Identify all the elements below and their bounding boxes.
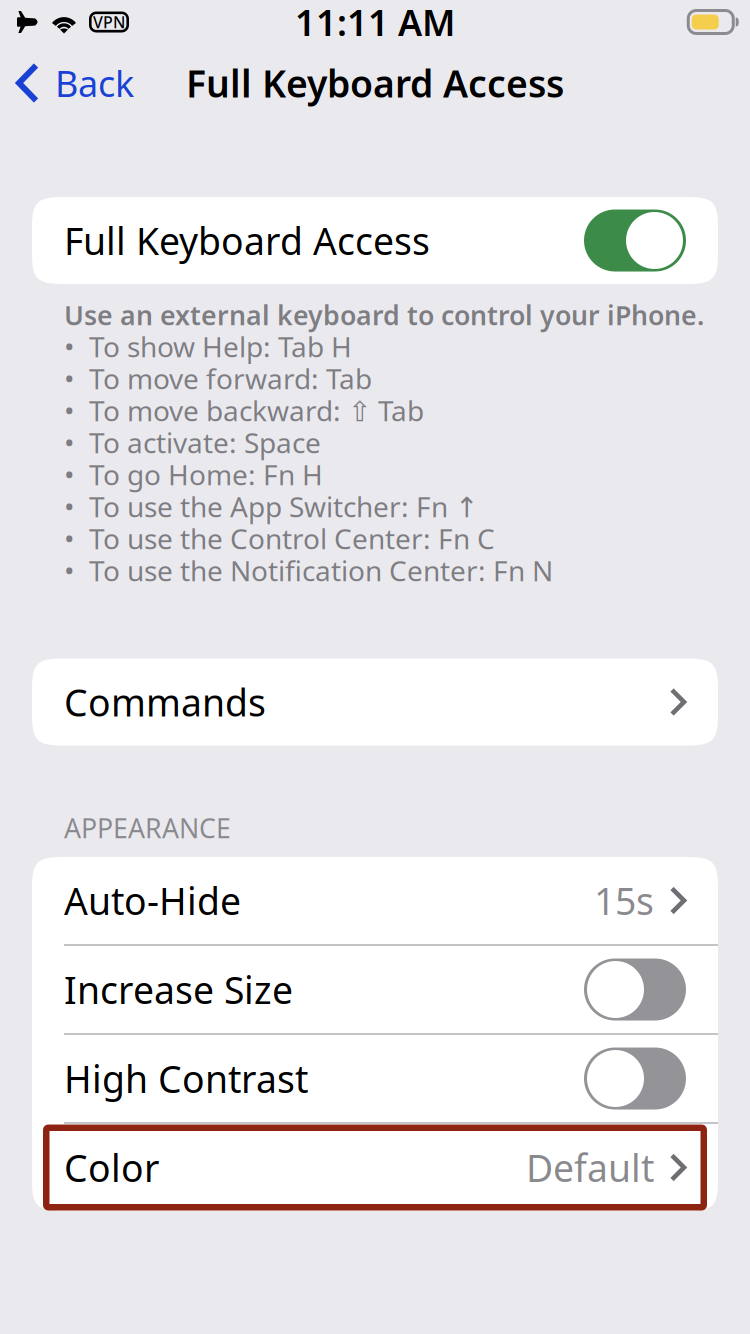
staticText: Auto-Hide	[64, 876, 241, 925]
button[interactable]: Increase Size	[32, 946, 718, 1033]
staticText: To use the Control Center: Fn C	[89, 520, 495, 557]
staticText: •	[64, 328, 75, 365]
staticText: •	[64, 360, 75, 397]
staticText: To use the Notification Center: Fn N	[89, 552, 553, 589]
staticText: VPN	[93, 11, 125, 33]
staticText: To use the App Switcher: Fn ↑	[89, 488, 478, 525]
button[interactable]: Full Keyboard Access	[32, 197, 718, 284]
staticText: 11:11 AM	[295, 0, 455, 46]
button[interactable]: Commands	[32, 658, 718, 745]
staticText: High Contrast	[64, 1054, 308, 1103]
staticText: Default	[526, 1143, 654, 1192]
staticText: To move backward: ⇧ Tab	[89, 392, 424, 429]
staticText: To go Home: Fn H	[89, 456, 323, 493]
staticText: Use an external keyboard to control your…	[64, 297, 704, 333]
staticText: •	[64, 424, 75, 461]
button[interactable]: Color	[32, 1124, 718, 1211]
staticText: Commands	[64, 677, 266, 727]
button[interactable]: Back	[0, 50, 148, 116]
staticText: Full Keyboard Access	[64, 216, 430, 265]
staticText: Color	[64, 1143, 159, 1192]
staticText: •	[64, 552, 75, 589]
staticText: Increase Size	[64, 965, 293, 1014]
staticText: •	[64, 456, 75, 493]
staticText: Full Keyboard Access	[186, 58, 564, 108]
staticText: To activate: Space	[89, 424, 321, 461]
staticText: To show Help: Tab H	[89, 328, 352, 365]
staticText: 15s	[594, 876, 654, 925]
staticText: APPEARANCE	[64, 810, 231, 846]
staticText: To move forward: Tab	[89, 360, 372, 397]
staticText: Back	[55, 59, 134, 107]
staticText: •	[64, 488, 75, 525]
button[interactable]: Auto-Hide	[32, 857, 718, 944]
staticText: •	[64, 392, 75, 429]
staticText: •	[64, 520, 75, 557]
button[interactable]: High Contrast	[32, 1035, 718, 1122]
